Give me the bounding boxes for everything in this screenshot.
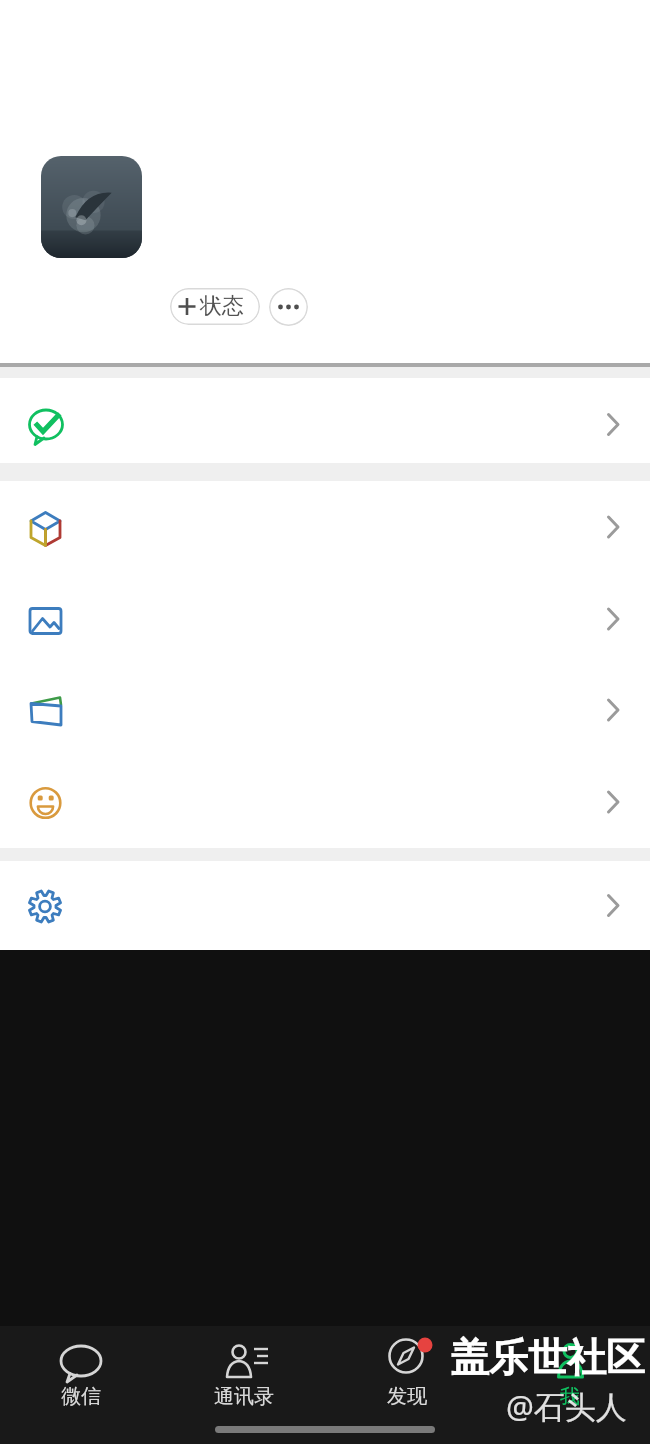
button[interactable] [0,481,650,573]
button[interactable]: 发现 [326,1326,489,1444]
button[interactable]: 微信 [0,1326,163,1444]
staticText: 我 [560,1384,580,1409]
button[interactable] [0,378,650,463]
button[interactable] [41,156,142,258]
button[interactable] [0,861,650,950]
staticText: 发现 [387,1384,427,1409]
button[interactable] [0,664,650,756]
button[interactable] [269,288,308,326]
staticText: @石头人 [506,1385,627,1427]
button[interactable] [0,756,650,848]
button[interactable]: 通讯录 [163,1326,326,1444]
staticText: 盖乐世社区 [450,1333,645,1382]
button[interactable]: 状态 [170,288,260,325]
button[interactable] [0,573,650,665]
staticText: 通讯录 [214,1384,274,1409]
button[interactable]: 我 [489,1326,650,1444]
staticText: 微信 [61,1384,101,1409]
staticText: 状态 [200,292,244,320]
